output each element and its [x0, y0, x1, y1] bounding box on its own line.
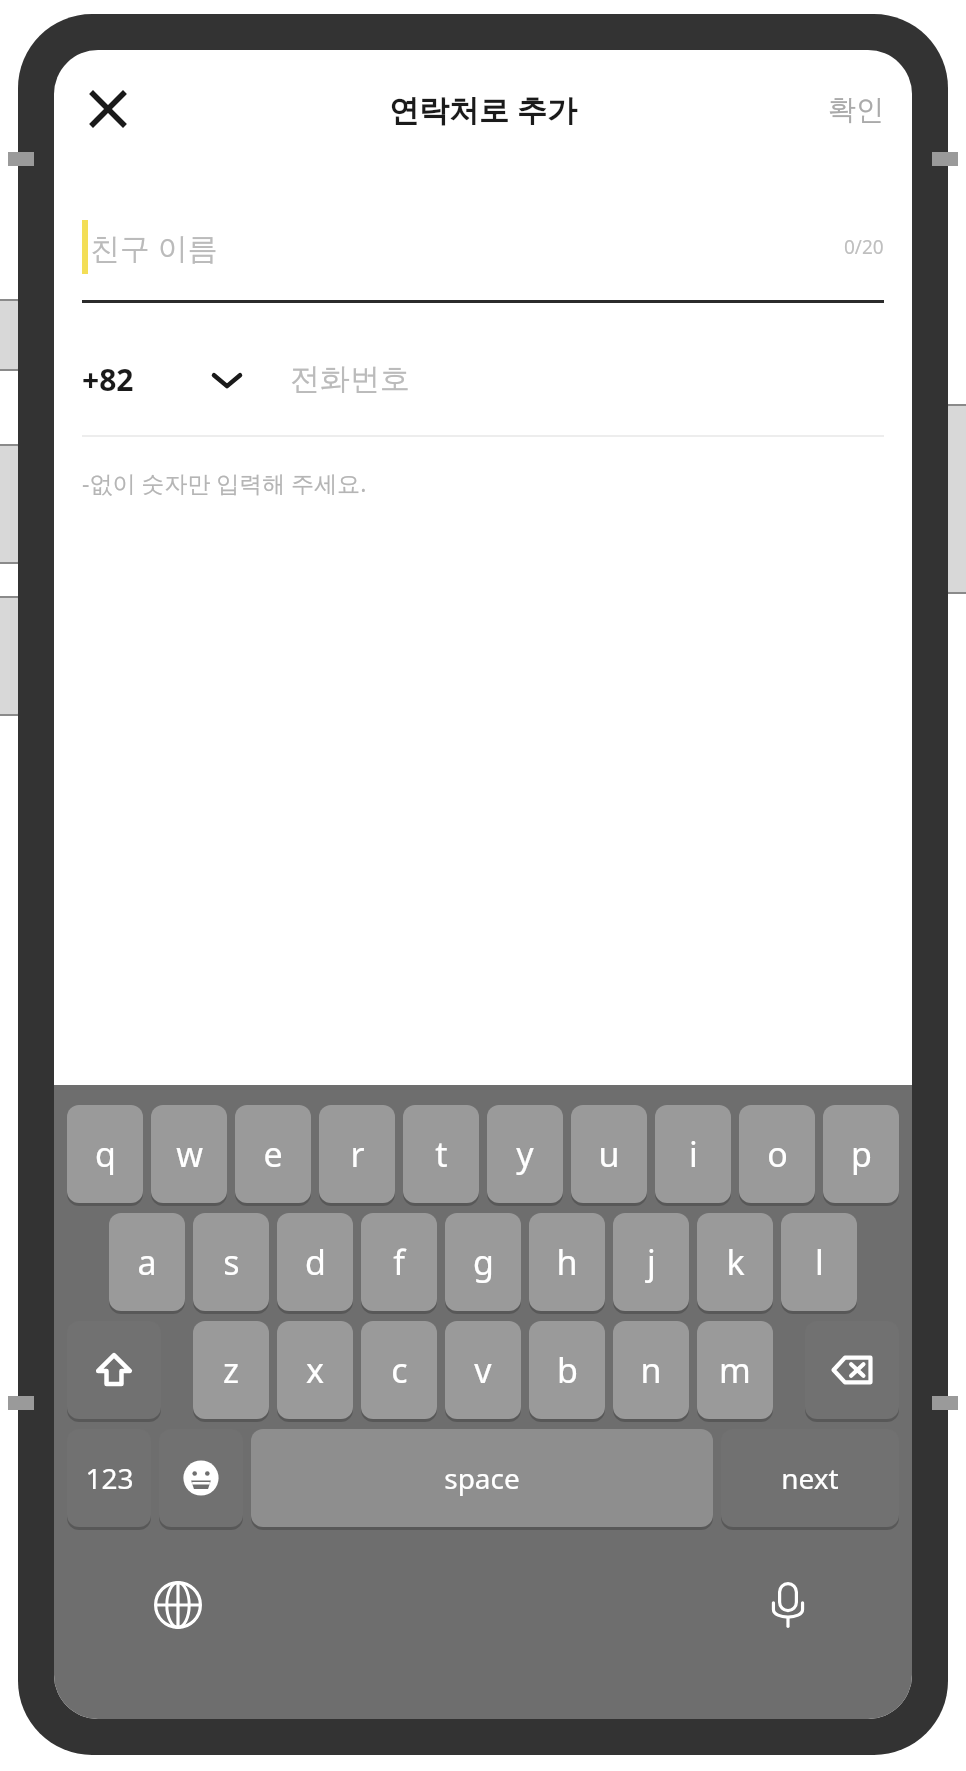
button[interactable]: n: [613, 1321, 689, 1419]
staticText: w: [176, 1131, 203, 1177]
button[interactable]: a: [109, 1213, 185, 1311]
button[interactable]: c: [361, 1321, 437, 1419]
staticText: t: [435, 1131, 448, 1177]
button[interactable]: 123: [67, 1429, 151, 1527]
button[interactable]: j: [613, 1213, 689, 1311]
staticText: e: [263, 1131, 283, 1177]
staticText: s: [223, 1239, 240, 1285]
staticText: d: [305, 1239, 326, 1285]
button[interactable]: 확인: [800, 76, 912, 143]
staticText: 친구 이름: [90, 227, 218, 268]
button[interactable]: i: [655, 1105, 731, 1203]
button[interactable]: r: [319, 1105, 395, 1203]
staticText: 123: [85, 1459, 134, 1497]
staticText: z: [223, 1347, 239, 1393]
staticText: x: [306, 1347, 324, 1393]
button[interactable]: d: [277, 1213, 353, 1311]
button[interactable]: l: [781, 1213, 857, 1311]
button[interactable]: b: [529, 1321, 605, 1419]
button[interactable]: p: [823, 1105, 899, 1203]
staticText: g: [473, 1239, 494, 1285]
button[interactable]: u: [571, 1105, 647, 1203]
staticText: 0/20: [844, 234, 884, 260]
button[interactable]: x: [277, 1321, 353, 1419]
button[interactable]: 전화번호: [290, 360, 884, 398]
staticText: 전화번호: [290, 360, 410, 398]
button[interactable]: f: [361, 1213, 437, 1311]
staticText: f: [393, 1239, 405, 1285]
staticText: u: [598, 1131, 620, 1177]
staticText: b: [557, 1347, 578, 1393]
button[interactable]: v: [445, 1321, 521, 1419]
staticText: space: [444, 1459, 520, 1497]
staticText: m: [719, 1347, 751, 1393]
staticText: i: [689, 1131, 698, 1177]
button[interactable]: space: [251, 1429, 713, 1527]
button[interactable]: y: [487, 1105, 563, 1203]
button[interactable]: z: [193, 1321, 269, 1419]
staticText: q: [95, 1131, 116, 1177]
button[interactable]: Voice input: [760, 1577, 816, 1633]
staticText: l: [815, 1239, 824, 1285]
staticText: k: [726, 1239, 745, 1285]
staticText: a: [137, 1239, 157, 1285]
button[interactable]: g: [445, 1213, 521, 1311]
button[interactable]: Shift: [67, 1321, 161, 1419]
button[interactable]: q: [67, 1105, 143, 1203]
staticText: h: [556, 1239, 578, 1285]
button[interactable]: o: [739, 1105, 815, 1203]
staticText: v: [474, 1347, 492, 1393]
button[interactable]: Emoji: [159, 1429, 243, 1527]
staticText: n: [640, 1347, 662, 1393]
staticText: 연락처로 추가: [389, 89, 577, 130]
button[interactable]: w: [151, 1105, 227, 1203]
button[interactable]: next: [721, 1429, 899, 1527]
button[interactable]: t: [403, 1105, 479, 1203]
staticText: c: [391, 1347, 408, 1393]
button[interactable]: +82: [82, 359, 252, 400]
button[interactable]: s: [193, 1213, 269, 1311]
staticText: j: [647, 1239, 656, 1285]
staticText: +82: [82, 359, 134, 400]
button[interactable]: 친구 이름: [82, 208, 884, 286]
button[interactable]: m: [697, 1321, 773, 1419]
staticText: o: [767, 1131, 788, 1177]
button[interactable]: e: [235, 1105, 311, 1203]
button[interactable]: k: [697, 1213, 773, 1311]
staticText: 확인: [828, 92, 884, 127]
staticText: y: [516, 1131, 534, 1177]
button[interactable]: h: [529, 1213, 605, 1311]
staticText: -없이 숫자만 입력해 주세요.: [82, 467, 367, 498]
staticText: r: [350, 1131, 365, 1177]
staticText: p: [851, 1131, 872, 1177]
button[interactable]: Change language: [150, 1577, 206, 1633]
button[interactable]: Backspace: [805, 1321, 899, 1419]
button[interactable]: Close: [70, 71, 146, 147]
staticText: next: [781, 1459, 839, 1497]
